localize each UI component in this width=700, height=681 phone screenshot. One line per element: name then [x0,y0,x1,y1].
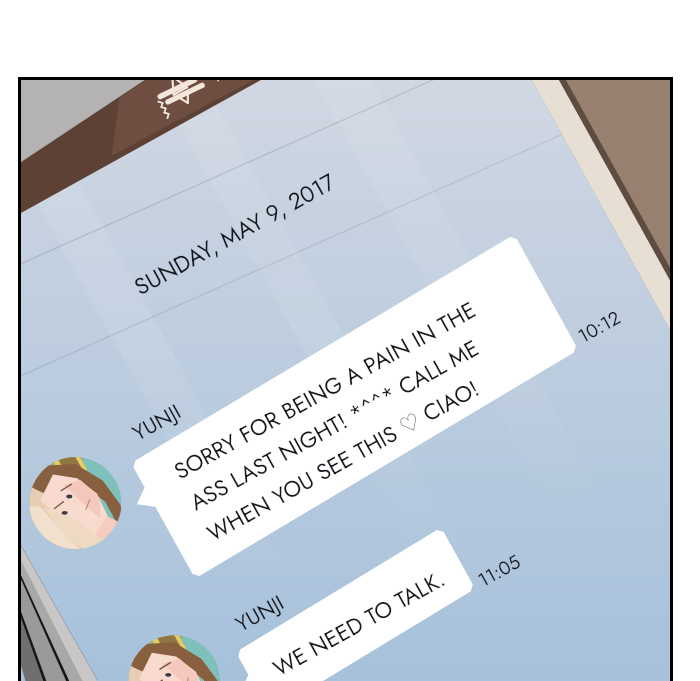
button[interactable]: 10:12 [573,304,626,350]
button[interactable]: YUNJI [230,588,290,639]
button[interactable]: ASS LAST NIGHT! *^^* CALL ME [184,332,485,519]
staticText: ASS LAST NIGHT! *^^* CALL ME [184,332,485,519]
staticText: 10:12 [573,304,626,350]
staticText: WE NEED TO TALK. [267,562,452,681]
staticText: SORRY FOR BEING A PAIN IN THE [168,294,482,488]
staticText: SUNDAY, MAY 9, 2017 [128,165,341,303]
staticText: 11:05 [473,548,525,594]
staticText: YUNJI [127,397,187,448]
button[interactable]: WHEN YOU SEE THIS ♡ CIAO! [201,372,485,550]
button[interactable]: SUNDAY, MAY 9, 2017 [21,80,670,681]
staticText: WHEN YOU SEE THIS ♡ CIAO! [201,372,485,550]
button[interactable]: SUNDAY, MAY 9, 2017 [128,165,341,303]
button[interactable]: 11:05 [473,548,525,594]
button[interactable]: YUNJI [127,397,187,448]
button[interactable]: WE NEED TO TALK. [267,562,452,681]
staticText: YUNJI [230,588,290,639]
button[interactable]: SORRY FOR BEING A PAIN IN THE [168,294,482,488]
